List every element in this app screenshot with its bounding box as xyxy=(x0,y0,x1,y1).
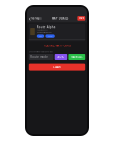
button[interactable]: AUTO xyxy=(55,54,67,60)
staticText: Updated 2 minutes ago xyxy=(37,32,52,33)
button[interactable]: SHARE xyxy=(45,34,55,38)
button[interactable]: ‹ xyxy=(27,14,42,22)
button[interactable]: CLEAR xyxy=(29,64,85,71)
staticText: 12.4 km · 00:42:10 xyxy=(37,29,48,31)
staticText: Choose how the route is generated xyxy=(29,51,53,53)
staticText: Route mode xyxy=(30,55,48,59)
button[interactable]: RESET ALL WAYPOINTS xyxy=(29,44,85,47)
button[interactable]: MANUAL xyxy=(68,54,85,60)
staticText: RESET ALL WAYPOINTS xyxy=(43,44,70,47)
staticText: EDIT xyxy=(39,35,42,37)
button[interactable]: LIVE xyxy=(77,16,87,21)
staticText: Route Alpha xyxy=(37,25,56,29)
staticText: MAP DETAILS xyxy=(52,17,68,20)
staticText: CLEAR xyxy=(53,65,61,69)
staticText: My Maps xyxy=(31,17,41,20)
staticText: LIVE xyxy=(79,17,84,20)
staticText: SHARE xyxy=(48,35,53,37)
button[interactable]: EDIT xyxy=(37,34,44,38)
staticText: AUTO xyxy=(57,55,64,59)
staticText: ‹ xyxy=(29,14,31,23)
staticText: MANUAL xyxy=(71,55,82,59)
